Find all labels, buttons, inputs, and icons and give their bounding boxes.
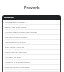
staticText: Look before you leap bbox=[5, 41, 26, 44]
button[interactable]: Better late than never bbox=[2, 25, 61, 30]
button[interactable]: Knowledge is power bbox=[2, 20, 61, 25]
button[interactable]: A friend in need bbox=[2, 70, 61, 72]
staticText: Time heals all wounds bbox=[5, 51, 27, 54]
button[interactable]: Proverbs bbox=[2, 15, 61, 20]
button[interactable]: No pain, no gain bbox=[2, 55, 61, 60]
button[interactable]: Honesty is the best policy bbox=[2, 60, 61, 65]
staticText: Proverb bbox=[24, 5, 40, 10]
staticText: Honesty is the best policy bbox=[5, 61, 31, 64]
button[interactable]: Fortune favours the bold bbox=[2, 65, 61, 70]
button[interactable]: Time heals all wounds bbox=[2, 50, 61, 55]
staticText: Practice makes perfect bbox=[5, 36, 28, 39]
staticText: Knowledge is power bbox=[5, 21, 25, 24]
staticText: Actions speak louder than words bbox=[5, 31, 38, 34]
staticText: No pain, no gain bbox=[5, 56, 22, 59]
staticText: Proverbs bbox=[4, 16, 14, 19]
staticText: Better late than never bbox=[5, 26, 27, 29]
staticText: Fortune favours the bold bbox=[5, 66, 30, 69]
button[interactable]: Look before you leap bbox=[2, 40, 61, 45]
button[interactable]: Actions speak louder than words bbox=[2, 30, 61, 35]
button[interactable]: Easy come, easy go bbox=[2, 45, 61, 50]
staticText: Easy come, easy go bbox=[5, 46, 24, 49]
button[interactable]: Practice makes perfect bbox=[2, 35, 61, 40]
